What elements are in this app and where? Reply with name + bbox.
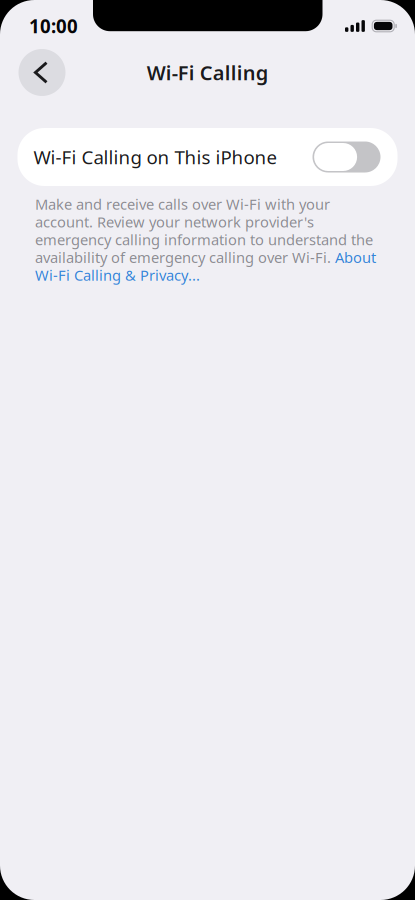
staticText: Make and receive calls over Wi-Fi with y… [35, 194, 330, 214]
staticText: Wi-Fi Calling [147, 59, 269, 86]
staticText: 10:00 [29, 14, 78, 38]
staticText: Wi-Fi Calling & Privacy... [35, 265, 200, 285]
button[interactable]: About Wi-Fi Calling & Privacy [331, 247, 376, 267]
button[interactable]: Wi-Fi Calling & Privacy... [35, 265, 200, 285]
staticText: Wi-Fi Calling on This iPhone [33, 145, 277, 169]
button[interactable]: Wi-Fi Calling on This iPhone [17, 128, 397, 186]
staticText: availability of emergency calling over W… [35, 247, 331, 267]
staticText: emergency calling information to underst… [35, 230, 373, 249]
staticText: account. Review your network provider's [35, 212, 314, 232]
button[interactable]: Back [18, 49, 65, 96]
staticText: About [331, 247, 376, 267]
